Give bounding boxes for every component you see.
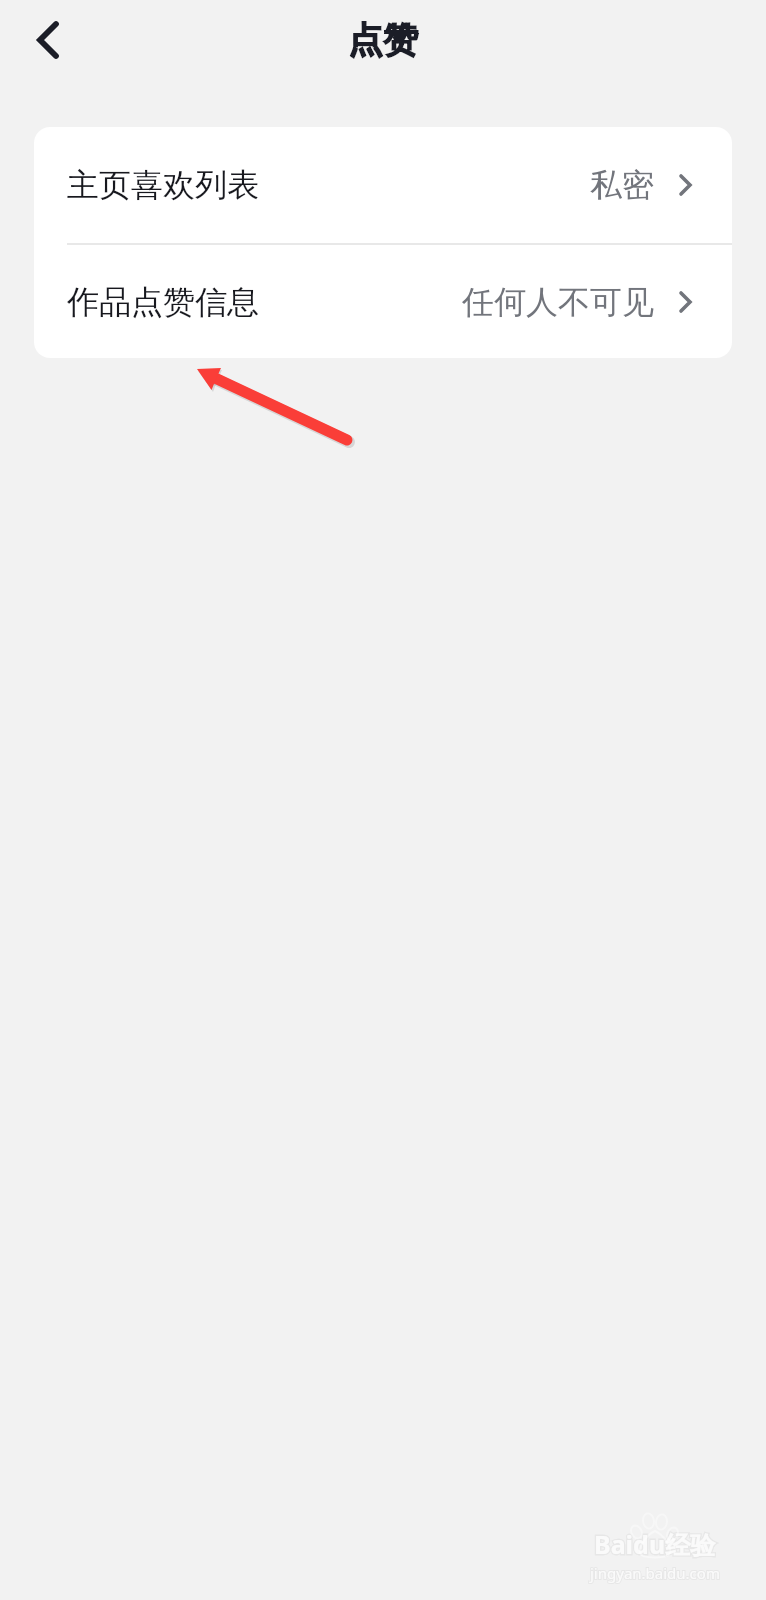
staticText: 私密	[590, 165, 654, 205]
staticText: 任何人不可见	[462, 282, 654, 322]
button[interactable]: Back	[18, 5, 78, 75]
button[interactable]: 作品点赞信息	[34, 245, 732, 358]
staticText: jingyan.baidu.com	[590, 1563, 720, 1583]
staticText: 主页喜欢列表	[67, 165, 259, 205]
staticText: Baidu经验	[594, 1527, 716, 1561]
staticText: jingyan.baidu.com	[590, 1563, 720, 1583]
staticText: 点赞	[348, 18, 418, 62]
staticText: Baidu经验	[594, 1527, 716, 1561]
button[interactable]: 主页喜欢列表	[34, 127, 732, 243]
staticText: 作品点赞信息	[67, 282, 259, 322]
